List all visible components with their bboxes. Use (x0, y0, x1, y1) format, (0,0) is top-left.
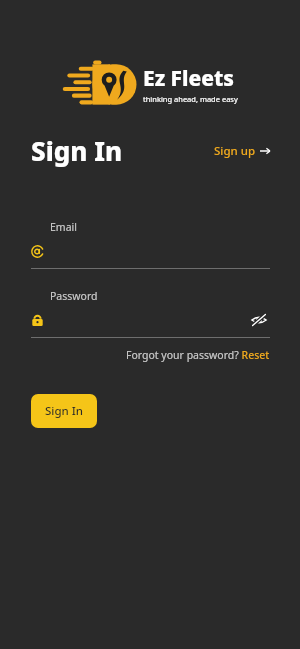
button[interactable]: Show password (248, 310, 270, 330)
staticText: thinking ahead, made easy (143, 94, 238, 104)
staticText: Forgot your password? Reset (126, 348, 270, 362)
button[interactable]: Password (31, 289, 270, 338)
staticText: Password (50, 289, 98, 303)
staticText: Sign In (31, 133, 123, 168)
other: Password (31, 314, 44, 327)
staticText: Ez Fleets (143, 64, 235, 93)
other: Email (31, 245, 44, 258)
other: Ez Fleets logo (62, 60, 138, 108)
staticText: Sign up (214, 143, 256, 159)
button[interactable]: Sign In (31, 394, 97, 428)
staticText: Sign In (45, 403, 84, 419)
staticText: Email (50, 220, 77, 234)
button[interactable]: Sign up (212, 139, 272, 163)
button[interactable]: Forgot your password? Reset (126, 346, 270, 364)
button[interactable]: Email (31, 220, 270, 269)
